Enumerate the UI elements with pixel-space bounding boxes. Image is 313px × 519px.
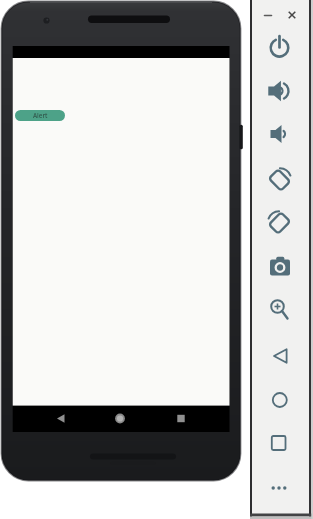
button[interactable] xyxy=(262,339,298,373)
button[interactable] xyxy=(262,74,298,108)
button[interactable] xyxy=(262,426,298,460)
button[interactable]: Alert xyxy=(15,110,65,121)
button[interactable] xyxy=(262,471,298,505)
button[interactable] xyxy=(46,406,74,431)
button[interactable] xyxy=(262,206,298,240)
button[interactable] xyxy=(284,8,300,24)
button[interactable] xyxy=(262,383,298,417)
button[interactable] xyxy=(260,8,276,24)
button[interactable] xyxy=(262,117,298,151)
button[interactable] xyxy=(167,406,195,431)
button[interactable] xyxy=(262,30,298,64)
button[interactable] xyxy=(106,406,134,431)
button[interactable] xyxy=(262,292,298,326)
button[interactable] xyxy=(262,163,298,197)
staticText: Alert xyxy=(33,111,48,120)
button[interactable] xyxy=(262,250,298,284)
